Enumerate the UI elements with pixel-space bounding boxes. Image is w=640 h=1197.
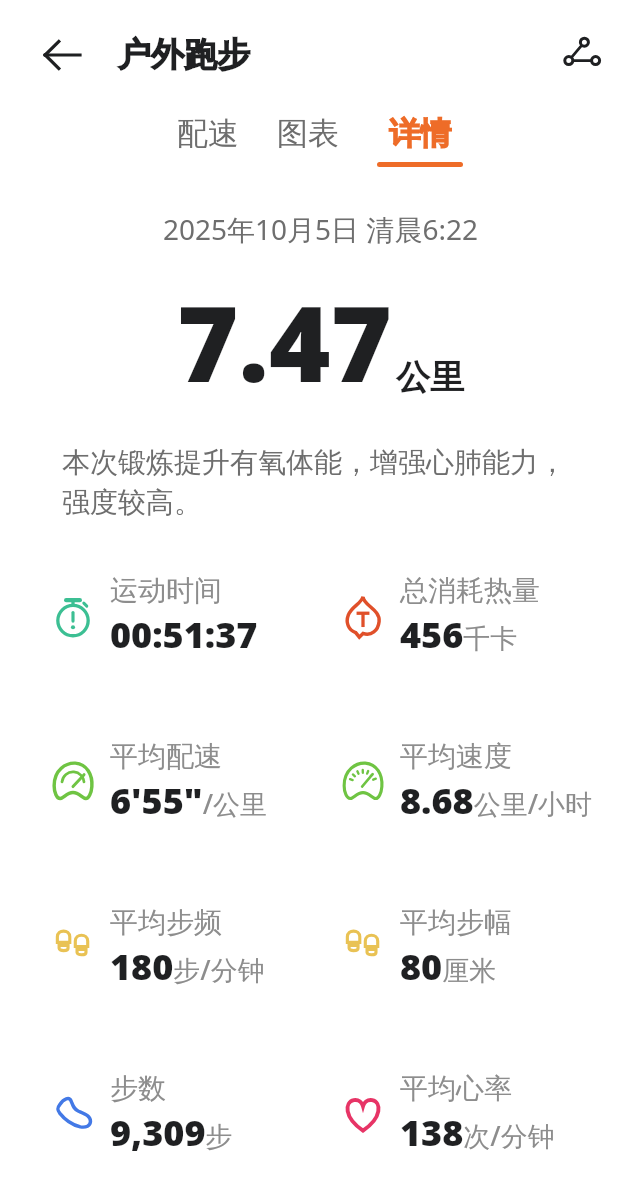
staticText: 平均步频: [110, 905, 222, 940]
staticText: 8.68公里/小时: [400, 776, 593, 825]
button[interactable]: 总消耗热量: [336, 546, 540, 686]
button[interactable]: 平均步幅: [336, 878, 512, 1018]
button[interactable]: 平均步频: [46, 878, 265, 1018]
staticText: 图表: [277, 114, 339, 153]
staticText: 运动时间: [110, 573, 222, 608]
staticText: 6'55"/公里: [110, 776, 268, 825]
staticText: 户外跑步: [118, 34, 250, 76]
button[interactable]: 运动时间: [46, 546, 258, 686]
staticText: 456千卡: [400, 610, 518, 659]
staticText: 00:51:37: [110, 610, 258, 659]
staticText: 平均配速: [110, 739, 222, 774]
button[interactable]: Share: [552, 25, 612, 85]
staticText: 步数: [110, 1071, 166, 1106]
button[interactable]: 配速: [167, 110, 249, 166]
staticText: 平均心率: [400, 1071, 512, 1106]
staticText: 9,309步: [110, 1108, 233, 1157]
button[interactable]: 平均配速: [46, 712, 268, 852]
staticText: 平均步幅: [400, 905, 512, 940]
staticText: 7.47: [177, 270, 392, 413]
staticText: 配速: [177, 114, 239, 153]
staticText: 公里: [396, 356, 464, 399]
staticText: 2025年10月5日 清晨6:22: [163, 210, 478, 248]
staticText: 详情: [389, 114, 451, 153]
staticText: 总消耗热量: [400, 573, 540, 608]
button[interactable]: 平均心率: [336, 1044, 555, 1184]
staticText: 180步/分钟: [110, 942, 265, 991]
staticText: 80厘米: [400, 942, 497, 991]
staticText: 本次锻炼提升有氧体能，增强心肺能力，强度较高。: [62, 445, 582, 520]
staticText: 138次/分钟: [400, 1108, 555, 1157]
button[interactable]: 平均速度: [336, 712, 593, 852]
button[interactable]: 详情: [367, 110, 473, 171]
button[interactable]: Back: [34, 27, 90, 83]
staticText: 平均速度: [400, 739, 512, 774]
button[interactable]: 图表: [267, 110, 349, 166]
button[interactable]: 步数: [46, 1044, 233, 1184]
